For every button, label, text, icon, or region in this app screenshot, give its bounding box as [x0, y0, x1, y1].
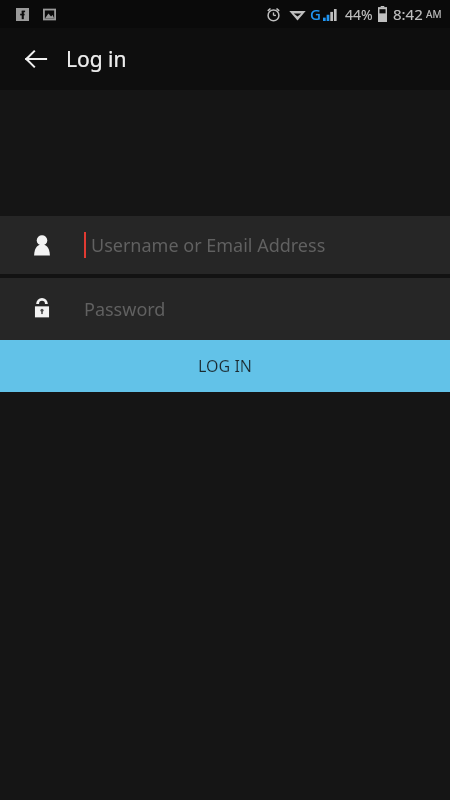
staticText: 8:42: [393, 4, 423, 24]
staticText: Username or Email Address: [91, 233, 326, 258]
staticText: 44%: [345, 5, 373, 24]
staticText: AM: [426, 7, 442, 21]
staticText: Log in: [66, 45, 127, 74]
button[interactable]: Back: [14, 37, 58, 81]
staticText: Password: [84, 297, 166, 322]
staticText: LOG IN: [198, 355, 252, 377]
button[interactable]: Password: [0, 278, 450, 340]
button[interactable]: LOG IN: [0, 340, 450, 392]
button[interactable]: Username or Email Address: [0, 216, 450, 274]
staticText: G: [310, 4, 321, 24]
